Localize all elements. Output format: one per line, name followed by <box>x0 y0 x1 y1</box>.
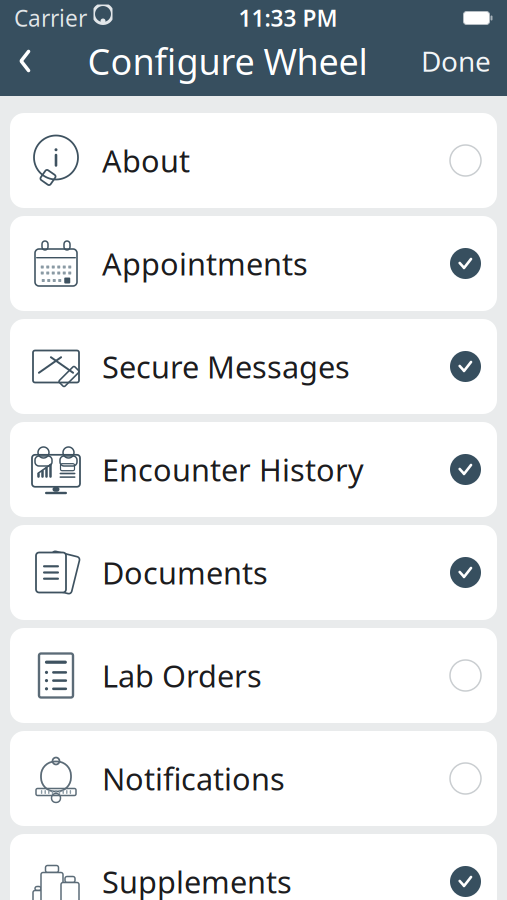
staticText: Encounter History <box>102 449 364 490</box>
button[interactable]: Back <box>0 33 50 89</box>
staticText: About <box>102 140 190 181</box>
button[interactable]: Notifications <box>0 731 507 826</box>
staticText: Appointments <box>102 243 308 284</box>
button[interactable]: Lab Orders <box>0 628 507 723</box>
button[interactable]: Documents <box>0 525 507 620</box>
staticText: Done <box>421 42 491 80</box>
staticText: Configure Wheel <box>87 37 367 85</box>
staticText: Lab Orders <box>102 655 262 696</box>
staticText: Documents <box>102 552 268 593</box>
staticText: Carrier <box>14 3 87 33</box>
button[interactable]: Secure Messages <box>0 319 507 414</box>
button[interactable]: About <box>0 113 507 208</box>
staticText: Secure Messages <box>102 346 350 387</box>
button[interactable]: Done <box>405 33 507 89</box>
button[interactable]: Supplements <box>0 834 507 900</box>
staticText: Supplements <box>102 861 292 900</box>
button[interactable]: Appointments <box>0 216 507 311</box>
staticText: 11:33 PM <box>238 3 337 33</box>
staticText: Notifications <box>102 758 285 799</box>
button[interactable]: Encounter History <box>0 422 507 517</box>
